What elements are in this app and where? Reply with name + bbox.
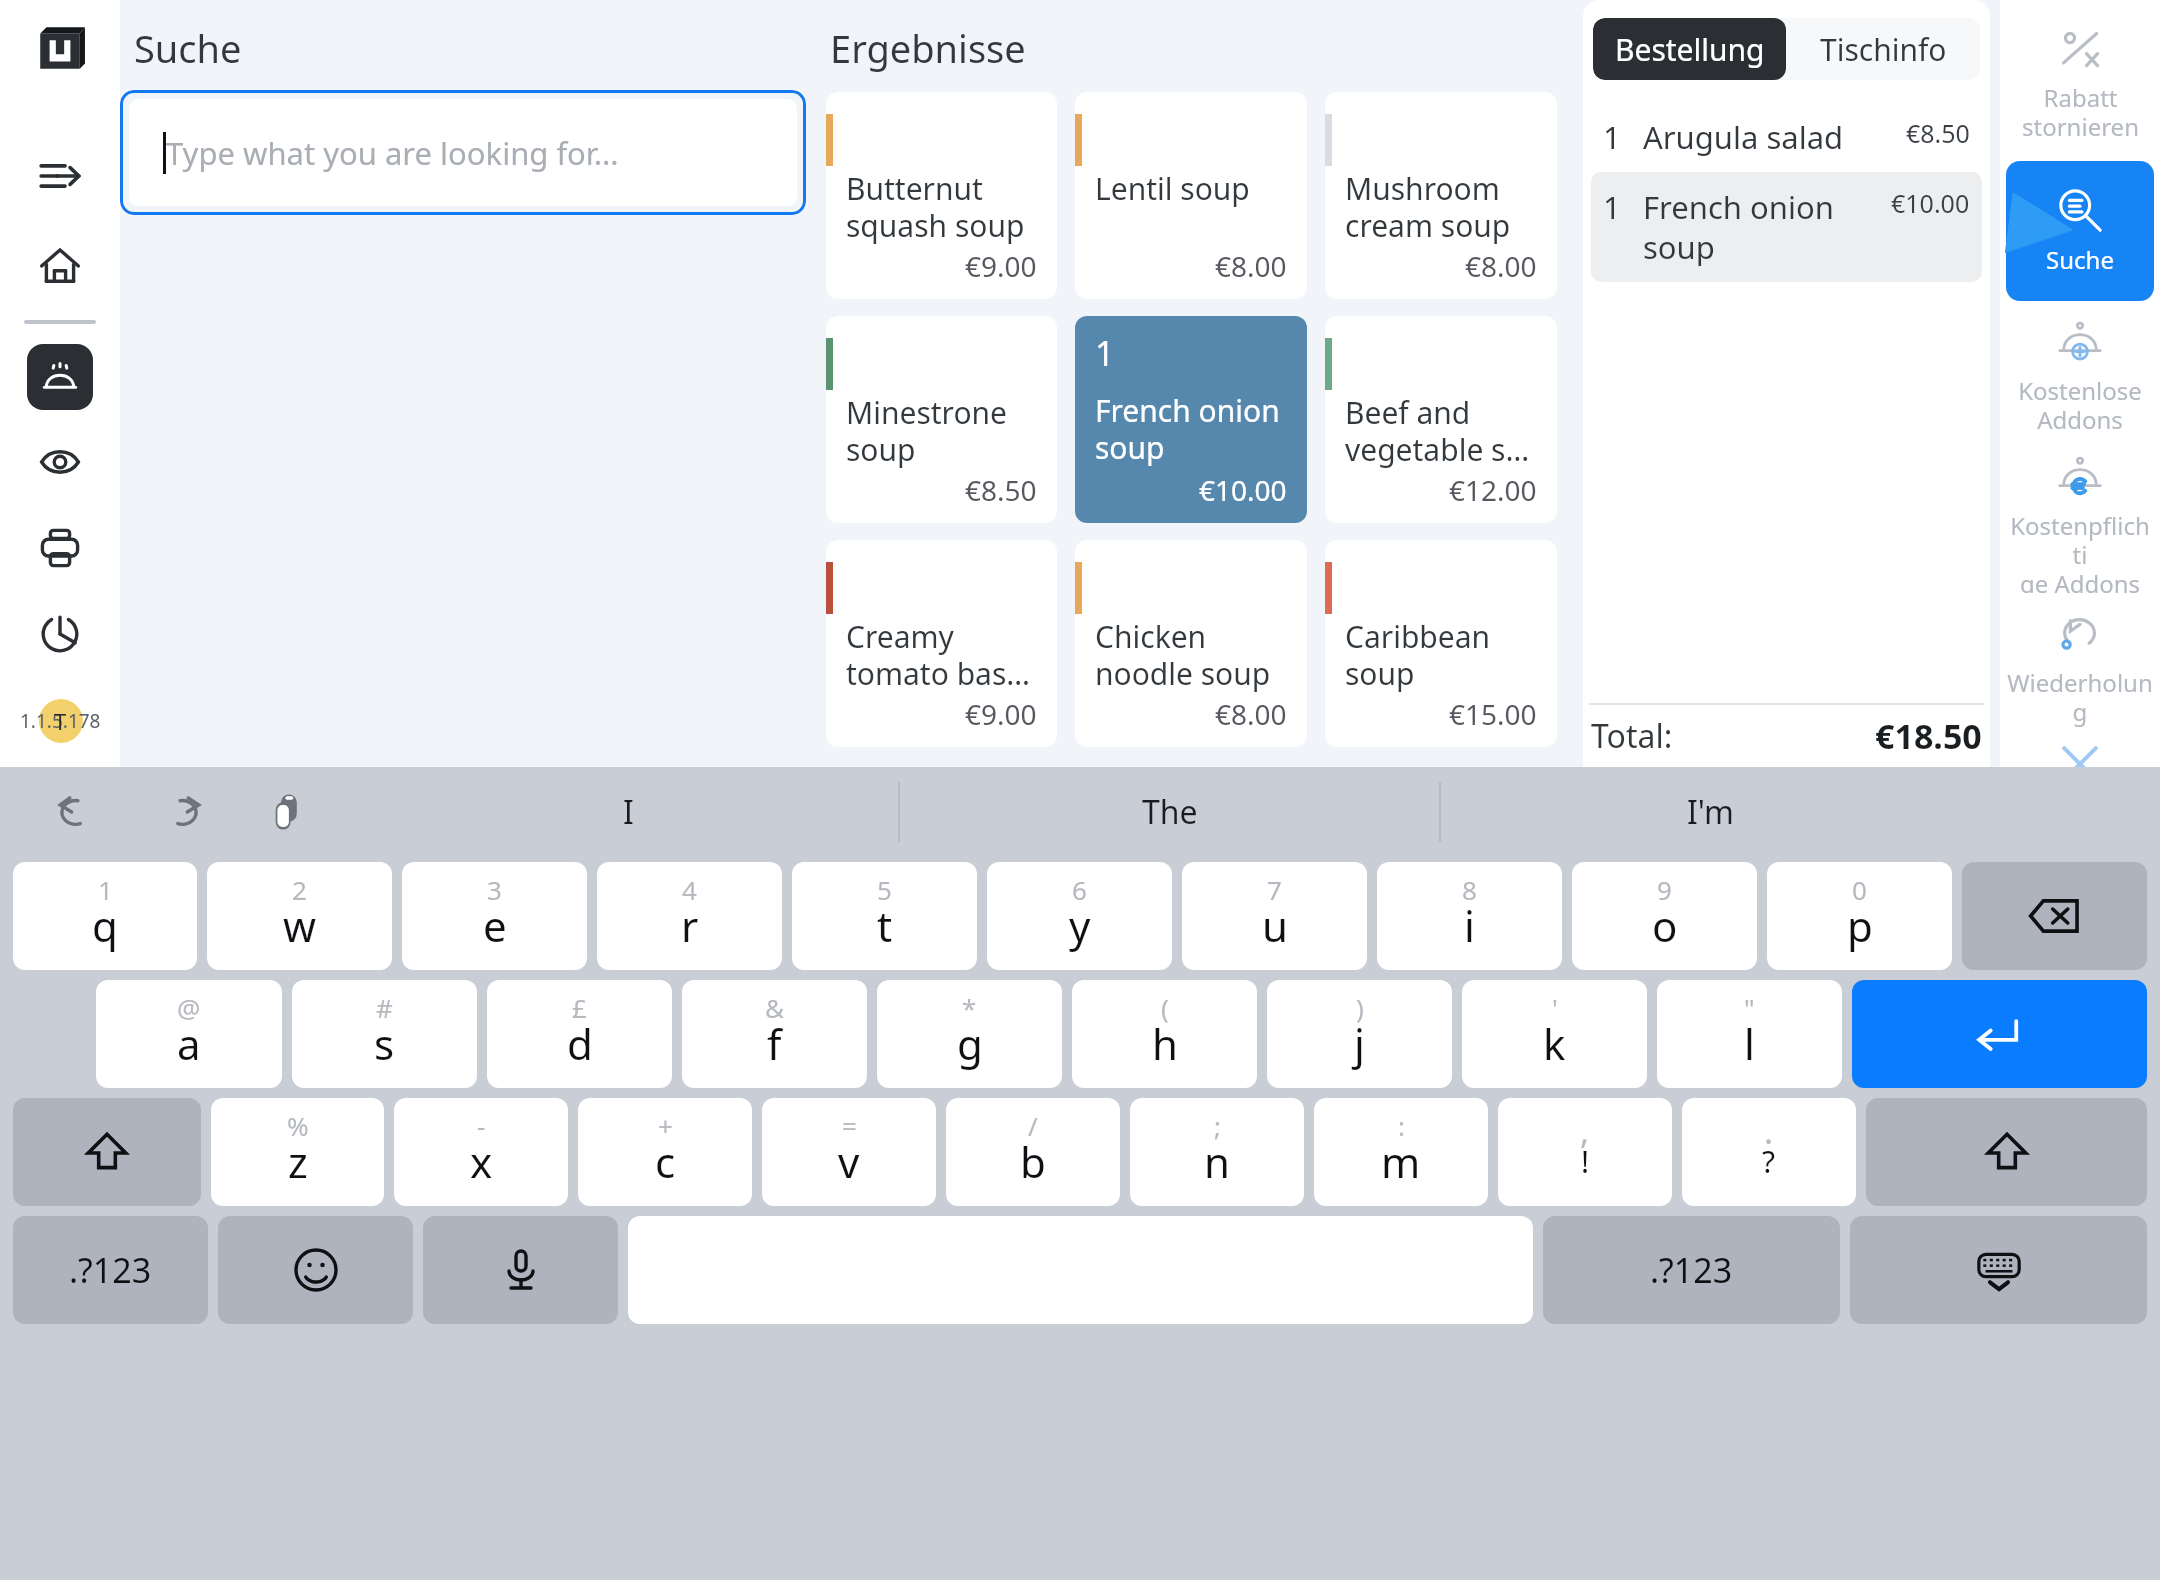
button[interactable]: Schließen bbox=[2000, 742, 2160, 767]
staticText: Beef and vegetable st... bbox=[1345, 392, 1537, 470]
button[interactable]: : bbox=[1314, 1098, 1488, 1206]
button[interactable]: View bbox=[28, 430, 92, 494]
staticText: r bbox=[681, 897, 699, 954]
staticText: €8.50 bbox=[965, 471, 1037, 509]
button[interactable]: Undo bbox=[46, 782, 106, 842]
button[interactable]: 9 bbox=[1572, 862, 1757, 970]
button[interactable]: Wiederholung bbox=[2006, 599, 2154, 739]
staticText: = bbox=[842, 1108, 857, 1143]
button[interactable]: Shift bbox=[13, 1098, 201, 1206]
staticText: - bbox=[477, 1108, 486, 1143]
button[interactable]: * bbox=[877, 980, 1062, 1088]
button[interactable]: / bbox=[946, 1098, 1120, 1206]
button[interactable]: Enter bbox=[1852, 980, 2147, 1088]
button[interactable]: Kostenlose Addons bbox=[2006, 307, 2154, 447]
button[interactable]: 1 bbox=[1075, 316, 1307, 523]
button[interactable]: Kostenpflichti ge Addons bbox=[2006, 453, 2154, 593]
button[interactable]: I'm bbox=[1441, 767, 1980, 857]
button[interactable]: Minestrone soup bbox=[826, 316, 1057, 523]
staticText: ? bbox=[1762, 1141, 1776, 1182]
button[interactable]: - bbox=[394, 1098, 568, 1206]
button[interactable]: .?123 bbox=[13, 1216, 208, 1324]
staticText: g bbox=[957, 1015, 983, 1072]
button[interactable]: ( bbox=[1072, 980, 1257, 1088]
button[interactable]: Rabatt stornieren bbox=[2006, 15, 2154, 155]
button[interactable]: = bbox=[762, 1098, 936, 1206]
button[interactable]: 3 bbox=[402, 862, 587, 970]
staticText: €8.50 bbox=[1906, 116, 1970, 150]
staticText: Arugula salad bbox=[1643, 116, 1906, 158]
staticText: f bbox=[767, 1015, 782, 1072]
button[interactable]: The bbox=[900, 767, 1439, 857]
button[interactable]: Home bbox=[28, 234, 92, 298]
staticText: .?123 bbox=[69, 1247, 152, 1293]
button[interactable]: Suche bbox=[2006, 161, 2154, 301]
staticText: €18.50 bbox=[1875, 713, 1982, 759]
staticText: q bbox=[92, 897, 118, 954]
button[interactable]: I bbox=[358, 767, 898, 857]
button[interactable]: # bbox=[292, 980, 477, 1088]
button[interactable]: Bestellung bbox=[1593, 18, 1786, 80]
staticText: y bbox=[1069, 897, 1091, 954]
staticText: Minestrone soup bbox=[846, 392, 1008, 470]
button[interactable]: Lentil soup bbox=[1075, 92, 1307, 299]
button[interactable]: Caribbean soup bbox=[1325, 540, 1557, 747]
button[interactable]: Tischinfo bbox=[1786, 18, 1980, 80]
staticText: a bbox=[177, 1015, 201, 1072]
staticText: Mushroom cream soup bbox=[1345, 168, 1511, 246]
button[interactable]: Mushroom cream soup bbox=[1325, 92, 1557, 299]
button[interactable]: Voice input bbox=[423, 1216, 618, 1324]
staticText: €15.00 bbox=[1449, 695, 1537, 733]
button[interactable]: Creamy tomato basil ... bbox=[826, 540, 1057, 747]
button[interactable]: Orders bbox=[27, 344, 93, 410]
button[interactable]: + bbox=[578, 1098, 752, 1206]
button[interactable]: Emoji bbox=[218, 1216, 413, 1324]
staticText: 1 bbox=[1603, 116, 1621, 158]
button[interactable]: Reports bbox=[28, 602, 92, 666]
button[interactable]: 8 bbox=[1377, 862, 1562, 970]
button[interactable]: , bbox=[1498, 1098, 1672, 1206]
staticText: Rabatt stornieren bbox=[2022, 81, 2139, 143]
button[interactable]: £ bbox=[487, 980, 672, 1088]
button[interactable]: 5 bbox=[792, 862, 977, 970]
button[interactable]: ) bbox=[1267, 980, 1452, 1088]
button[interactable]: .?123 bbox=[1543, 1216, 1840, 1324]
button[interactable]: Beef and vegetable st... bbox=[1325, 316, 1557, 523]
button[interactable]: 2 bbox=[207, 862, 392, 970]
button[interactable]: Type what you are looking for... bbox=[129, 99, 797, 206]
staticText: 8 bbox=[1462, 872, 1477, 907]
staticText: 5 bbox=[877, 872, 892, 907]
button[interactable]: 1 bbox=[1591, 102, 1982, 172]
button[interactable]: Butternut squash soup bbox=[826, 92, 1057, 299]
button[interactable]: Shift bbox=[1866, 1098, 2147, 1206]
button[interactable]: . bbox=[1682, 1098, 1856, 1206]
button[interactable]: ' bbox=[1462, 980, 1647, 1088]
button[interactable]: 1 bbox=[13, 862, 197, 970]
button[interactable]: Redo bbox=[152, 782, 212, 842]
staticText: 1 bbox=[98, 872, 113, 907]
button[interactable]: @ bbox=[96, 980, 282, 1088]
button[interactable]: 6 bbox=[987, 862, 1172, 970]
button[interactable]: 1 bbox=[1591, 172, 1982, 282]
button[interactable]: Hide keyboard bbox=[1850, 1216, 2147, 1324]
button[interactable]: Backspace bbox=[1962, 862, 2147, 970]
staticText: . bbox=[1764, 1108, 1774, 1154]
button[interactable]: Chicken noodle soup bbox=[1075, 540, 1307, 747]
button[interactable]: 4 bbox=[597, 862, 782, 970]
staticText: u bbox=[1262, 897, 1288, 954]
button[interactable]: ; bbox=[1130, 1098, 1304, 1206]
button[interactable]: " bbox=[1657, 980, 1842, 1088]
button[interactable]: 0 bbox=[1767, 862, 1952, 970]
button[interactable]: 7 bbox=[1182, 862, 1367, 970]
staticText: €12.00 bbox=[1449, 471, 1537, 509]
button[interactable]: Menu bbox=[28, 144, 92, 208]
button[interactable]: Clipboard bbox=[258, 782, 318, 842]
staticText: €10.00 bbox=[1199, 471, 1287, 509]
button[interactable]: % bbox=[211, 1098, 384, 1206]
button[interactable]: Logo bbox=[33, 22, 87, 76]
staticText: s bbox=[374, 1015, 395, 1072]
button[interactable]: & bbox=[682, 980, 867, 1088]
button[interactable]: Print bbox=[28, 516, 92, 580]
staticText: .?123 bbox=[1650, 1247, 1733, 1293]
